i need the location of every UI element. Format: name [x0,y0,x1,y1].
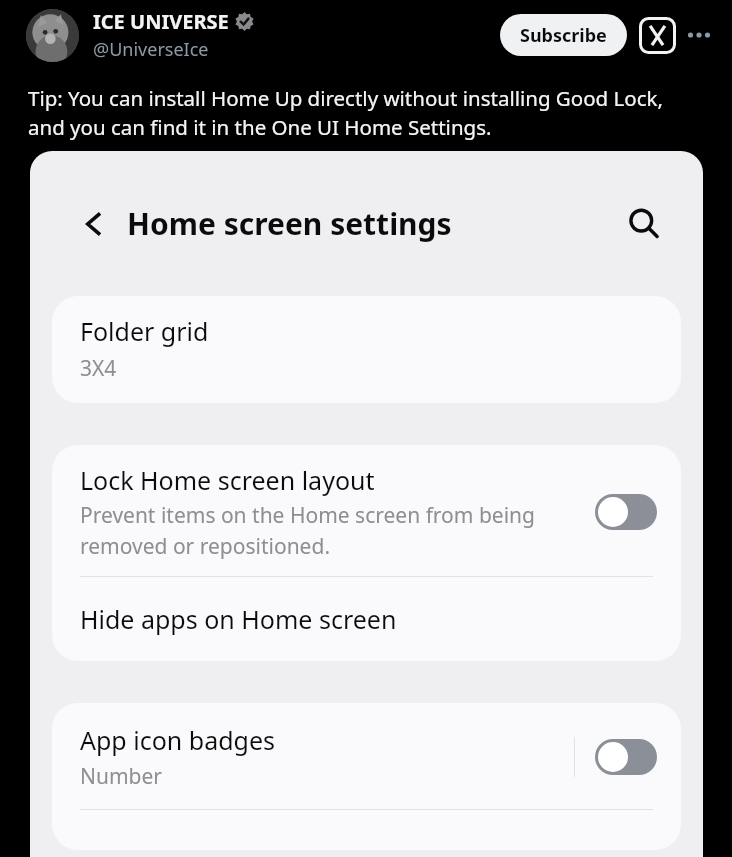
button[interactable]: Lock Home screen layout [52,445,681,576]
staticText: Hide apps on Home screen [80,602,397,636]
button[interactable]: Hide apps on Home screen [52,577,681,661]
staticText: Number [80,762,163,791]
staticText: App icon badges [80,723,275,757]
button[interactable]: Search [623,203,665,245]
staticText: 3X4 [80,354,117,383]
staticText: @UniverseIce [93,37,209,62]
button[interactable]: ICE UNIVERSE [93,8,500,62]
button[interactable]: Back [76,206,112,242]
staticText: Tip: You can install Home Up directly wi… [28,84,702,141]
button[interactable]: Toggle [595,739,657,775]
button[interactable]: X app [639,17,676,54]
staticText: Folder grid [80,314,209,348]
staticText: Lock Home screen layout [80,463,375,497]
button[interactable]: Toggle [595,494,657,530]
staticText: Home screen settings [127,203,452,244]
staticText: ICE UNIVERSE [93,8,229,35]
staticText: Subscribe [520,23,607,48]
button[interactable]: Subscribe [500,14,627,56]
button[interactable]: Profile picture [26,9,79,62]
button[interactable]: More options [684,20,714,50]
button[interactable]: Folder grid [52,296,681,403]
staticText: Prevent items on the Home screen from be… [80,501,583,560]
button[interactable]: App icon badges [52,703,681,809]
